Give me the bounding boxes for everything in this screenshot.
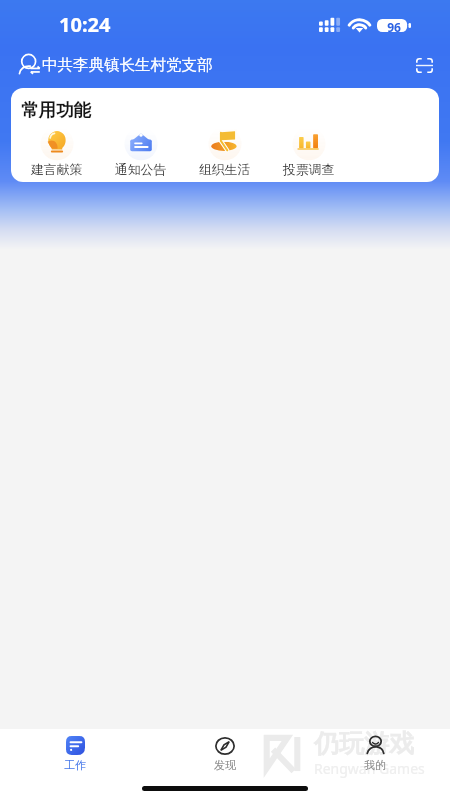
button[interactable]: Scan QR code [410,51,438,79]
staticText: 中共李典镇长生村党支部 [42,55,213,75]
button[interactable]: 组织生活 [183,125,267,178]
button[interactable]: 发现 [150,729,300,776]
staticText: 建言献策 [31,162,83,178]
button[interactable]: 投票调查 [267,125,351,178]
staticText: Rengwan Games [314,759,425,778]
staticText: 发现 [214,758,236,772]
staticText: 常用功能 [21,99,91,121]
button[interactable]: 通知公告 [99,125,183,178]
staticText: 组织生活 [199,162,251,178]
button[interactable]: 工作 [0,729,150,776]
button[interactable]: 我的 [300,729,450,776]
staticText: 10:24 [59,11,111,38]
button[interactable]: 中共李典镇长生村党支部 [14,51,218,79]
staticText: 仍玩游戏 [314,728,414,759]
staticText: 投票调查 [283,162,335,178]
staticText: 我的 [364,758,386,772]
staticText: 工作 [64,758,86,772]
staticText: 96 [379,19,409,32]
staticText: 通知公告 [115,162,167,178]
button[interactable]: 建言献策 [15,125,99,178]
